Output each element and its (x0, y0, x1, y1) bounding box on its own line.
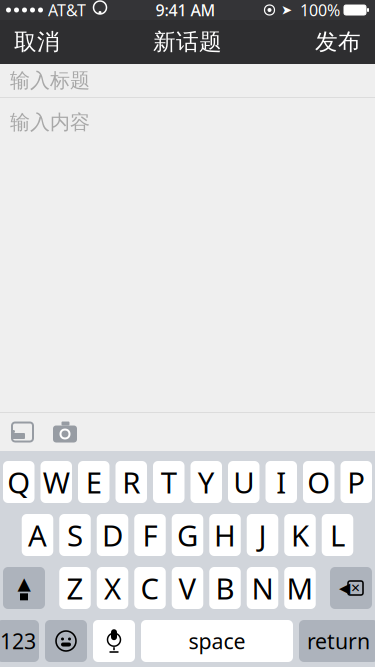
staticText: A (28, 515, 47, 554)
staticText: space (188, 627, 245, 655)
button[interactable]: V (172, 567, 203, 609)
button[interactable]: Dictation (93, 620, 135, 662)
staticText: ◀ (339, 580, 350, 596)
staticText: Z (66, 568, 83, 607)
button[interactable]: T (153, 461, 184, 503)
button[interactable]: N (247, 567, 278, 609)
staticText: D (102, 515, 123, 554)
button[interactable]: C (134, 567, 166, 609)
button[interactable]: space (141, 620, 293, 662)
button[interactable]: 取消 (4, 20, 70, 64)
staticText: L (330, 515, 345, 554)
staticText: H (214, 515, 236, 554)
staticText: G (177, 515, 198, 554)
staticText: I (276, 462, 286, 501)
button[interactable]: 123 (0, 620, 39, 662)
staticText: Y (198, 462, 215, 501)
button[interactable]: F (134, 514, 166, 556)
staticText: N (251, 568, 273, 607)
staticText: 123 (0, 627, 36, 655)
staticText: E (86, 462, 102, 501)
button[interactable]: I (265, 461, 297, 503)
button[interactable]: P (340, 461, 372, 503)
button[interactable]: K (284, 514, 316, 556)
button[interactable]: X (97, 567, 128, 609)
button[interactable]: M (284, 567, 316, 609)
button[interactable]: Photo Library (2, 414, 43, 449)
button[interactable]: Z (59, 567, 91, 609)
staticText: U (233, 462, 254, 501)
button[interactable]: Q (3, 461, 34, 503)
button[interactable]: L (322, 514, 353, 556)
button[interactable]: S (59, 514, 91, 556)
button[interactable]: Emoji (45, 620, 87, 662)
staticText: C (140, 568, 159, 607)
staticText: S (67, 515, 83, 554)
button[interactable]: O (303, 461, 334, 503)
staticText: 9:41 AM (155, 0, 215, 21)
button[interactable]: U (228, 461, 259, 503)
staticText: 输入标题 (10, 68, 90, 93)
button[interactable]: Shift (3, 567, 45, 609)
staticText: V (178, 568, 196, 607)
staticText: F (142, 515, 157, 554)
button[interactable]: 发布 (305, 20, 371, 64)
button[interactable]: Camera (43, 413, 87, 450)
staticText: X (104, 568, 121, 607)
button[interactable]: A (22, 514, 53, 556)
staticText: 取消 (14, 28, 60, 56)
staticText: ▲ (17, 574, 30, 593)
staticText: 新话题 (153, 28, 222, 56)
button[interactable]: H (209, 514, 241, 556)
button[interactable]: R (115, 461, 147, 503)
button[interactable]: Y (190, 461, 222, 503)
staticText: O (307, 462, 330, 501)
staticText: 输入内容 (10, 110, 90, 135)
staticText: 发布 (315, 28, 361, 56)
staticText: Q (7, 462, 30, 501)
button[interactable]: Delete (330, 567, 372, 609)
staticText: T (161, 462, 177, 501)
button[interactable]: W (40, 461, 72, 503)
staticText: ✕ (350, 581, 360, 595)
staticText: J (258, 515, 266, 554)
button[interactable]: D (97, 514, 128, 556)
button[interactable]: J (247, 514, 278, 556)
staticText: W (43, 462, 70, 501)
staticText: B (215, 568, 234, 607)
button[interactable]: E (78, 461, 109, 503)
button[interactable]: B (209, 567, 241, 609)
staticText: K (291, 515, 309, 554)
staticText: 100% (300, 0, 340, 21)
staticText: P (347, 462, 365, 501)
staticText: ➤ (281, 2, 292, 17)
button[interactable]: return (299, 620, 375, 662)
staticText: AT&T (48, 0, 86, 21)
staticText: M (286, 568, 313, 607)
button[interactable]: G (172, 514, 203, 556)
staticText: return (307, 627, 370, 655)
staticText: R (122, 462, 140, 501)
